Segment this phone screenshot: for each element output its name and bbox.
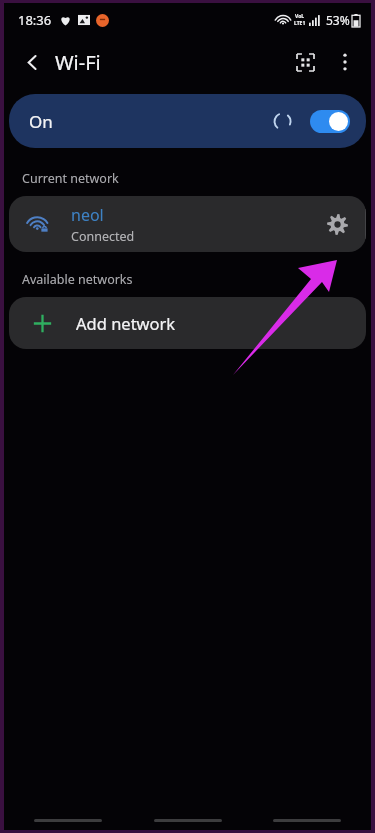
button[interactable]: Add network bbox=[9, 297, 366, 349]
staticText: Connected bbox=[71, 228, 135, 245]
button[interactable]: On bbox=[9, 94, 366, 148]
staticText: neol bbox=[71, 204, 104, 226]
button[interactable]: Network settings bbox=[314, 201, 360, 247]
staticText: Wi-Fi bbox=[55, 49, 101, 76]
button[interactable]: Wi-Fi toggle bbox=[310, 110, 350, 133]
staticText: Available networks bbox=[22, 271, 133, 288]
button[interactable]: neol bbox=[9, 196, 366, 252]
staticText: 18:36 bbox=[18, 11, 52, 29]
button[interactable]: More options bbox=[325, 42, 365, 82]
staticText: On bbox=[29, 110, 53, 133]
staticText: VoL bbox=[295, 13, 305, 20]
button[interactable]: Scan QR code bbox=[285, 42, 325, 82]
staticText: LTE1 bbox=[294, 20, 306, 27]
staticText: Add network bbox=[76, 312, 176, 334]
button[interactable]: Back bbox=[12, 42, 52, 82]
staticText: 53% bbox=[326, 12, 350, 28]
staticText: Current network bbox=[22, 170, 119, 187]
